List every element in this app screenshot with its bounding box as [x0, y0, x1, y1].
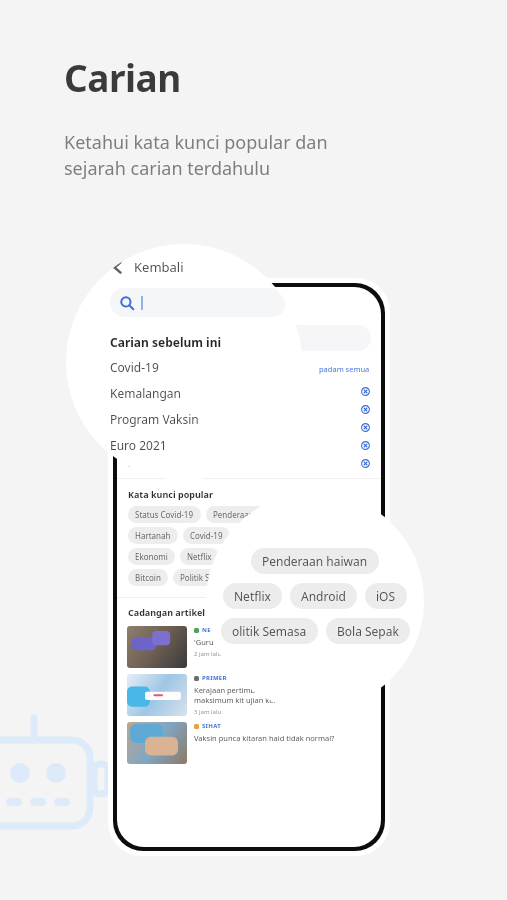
button[interactable]: NETZKORNER — [117, 623, 381, 671]
other: Remove — [361, 423, 370, 432]
staticText: Status Covid-19 — [135, 509, 194, 520]
button[interactable] — [127, 325, 371, 351]
staticText: PKP — [128, 457, 145, 469]
staticText: olitik Semasa — [232, 623, 307, 639]
staticText: Covid-19 — [128, 385, 165, 397]
staticText: 2 jam lalu — [194, 650, 222, 658]
button[interactable]: Covid-19 — [117, 382, 381, 400]
staticText: PRIMER — [202, 674, 227, 682]
button[interactable]: Ekonomi — [128, 548, 175, 565]
staticText: SIHAT — [202, 722, 221, 730]
button[interactable]: Covid-19 — [110, 359, 159, 375]
staticText: Cadangan artikel — [128, 606, 206, 618]
other: Back — [110, 260, 125, 275]
staticText: padam semua — [319, 364, 370, 374]
staticText: Hartanah — [135, 530, 171, 541]
staticText: Euro 2021 — [128, 439, 171, 451]
staticText: iOS — [376, 588, 396, 604]
staticText: Bitcoin — [135, 572, 161, 583]
staticText: Netflix — [234, 588, 271, 604]
staticText: Bola Sepak — [337, 623, 399, 639]
staticText: Carian sebelum ini — [110, 334, 222, 350]
staticText: Kemalangan — [110, 385, 181, 401]
staticText: Kerajaan pertimbang turun harga maksimum… — [194, 685, 343, 705]
button[interactable]: Status Covid-19 — [128, 506, 201, 523]
button[interactable]: Netflix — [180, 548, 219, 565]
other: Remove — [361, 441, 370, 450]
button[interactable]: Netflix — [223, 583, 282, 609]
button[interactable]: SIHAT — [117, 719, 381, 767]
staticText: Politik Semasa — [180, 572, 235, 583]
staticText: Covid-19 — [190, 530, 223, 541]
button[interactable]: iOS — [365, 583, 407, 609]
staticText: NETZKORNER — [202, 626, 245, 634]
staticText: Carian — [64, 52, 181, 102]
staticText: Program Vaksin — [128, 421, 195, 433]
staticText: Program Vaksin — [110, 411, 199, 427]
button[interactable]: Penderaan haiwan — [251, 548, 379, 574]
button[interactable]: Penderaan haiwan — [206, 506, 291, 523]
staticText: Android — [231, 551, 261, 562]
button[interactable] — [110, 288, 286, 317]
button[interactable]: Back — [110, 258, 184, 276]
other: Remove — [361, 405, 370, 414]
button[interactable]: Back — [117, 295, 381, 319]
button[interactable]: Kemalangan — [110, 385, 181, 401]
button[interactable]: Politik Semasa — [173, 569, 242, 586]
button[interactable]: Euro 2021 — [117, 436, 381, 454]
staticText: Netflix — [187, 551, 212, 562]
staticText: Euro 2021 — [110, 437, 167, 453]
staticText: Ekonomi — [135, 551, 168, 562]
button[interactable]: Bitcoin — [128, 569, 168, 586]
other: Remove — [361, 387, 370, 396]
staticText: iOS — [280, 551, 293, 562]
staticText: Kembali — [134, 258, 184, 276]
button[interactable]: Bola Sepak — [247, 569, 303, 586]
button[interactable]: Kemalangan — [117, 400, 381, 418]
button[interactable]: Program Vaksin — [117, 418, 381, 436]
staticText: Kemalangan — [128, 403, 182, 415]
button[interactable]: iOS — [273, 548, 300, 565]
button[interactable]: padam semua — [319, 364, 370, 374]
button[interactable]: olitik Semasa — [221, 618, 318, 644]
staticText: Kata kunci popular — [128, 488, 213, 500]
staticText: Carian sebelum ini — [128, 363, 212, 375]
button[interactable]: Bola Sepak — [326, 618, 410, 644]
staticText: Covid-19 — [110, 359, 159, 375]
staticText: Bola Sepak — [254, 572, 296, 583]
other: Back — [127, 301, 139, 313]
button[interactable]: PKP — [117, 454, 381, 472]
other: Remove — [361, 459, 370, 468]
button[interactable]: Hartanah — [128, 527, 178, 544]
button[interactable]: Program Vaksin — [110, 411, 199, 427]
staticText: Android — [301, 588, 346, 604]
staticText: Ketahui kata kunci popular dan sejarah c… — [64, 130, 328, 181]
staticText: Penderaan haiwan — [262, 553, 368, 569]
button[interactable]: Android — [224, 548, 268, 565]
button[interactable]: Android — [290, 583, 357, 609]
button[interactable]: PRIMER — [117, 671, 381, 719]
staticText: Vaksin punca kitaran haid tidak normal? — [194, 733, 335, 743]
button[interactable]: Covid-19 — [183, 527, 230, 544]
staticText: 3 jam lalu — [194, 708, 222, 716]
staticText: Penderaan haiwan — [213, 509, 284, 520]
button[interactable]: Euro 2021 — [110, 437, 167, 453]
staticText: 'Guru enggan divaksin patut dibuang kerj… — [194, 637, 347, 647]
